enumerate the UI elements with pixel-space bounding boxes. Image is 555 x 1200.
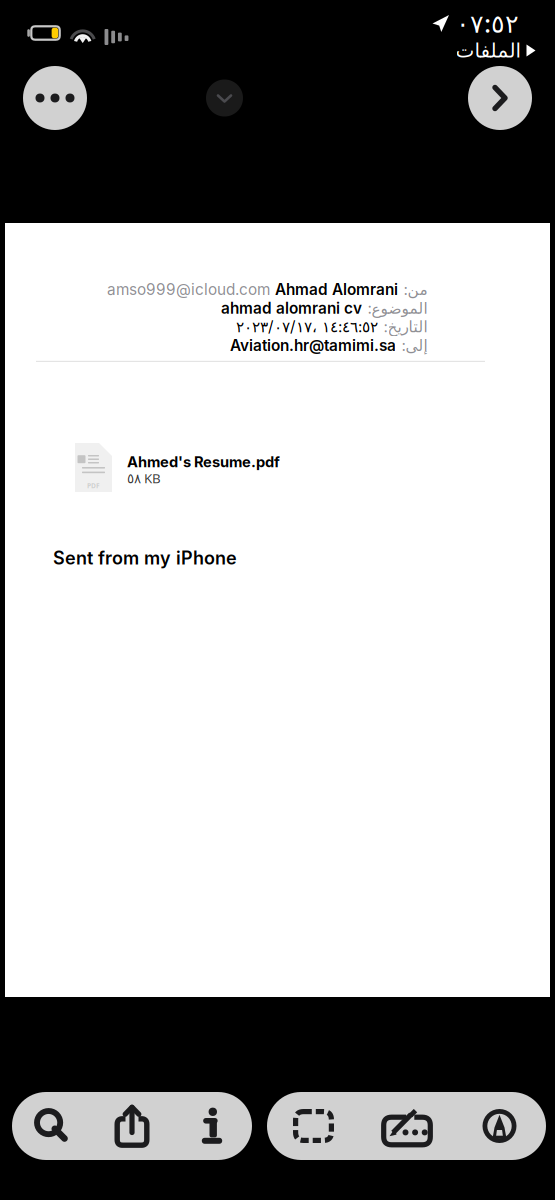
- staticText: ٠٧:٥٢: [456, 8, 519, 39]
- staticText: ٥٨ KB: [127, 469, 161, 487]
- staticText: PDF: [87, 481, 100, 490]
- button[interactable]: Collapse: [206, 79, 243, 116]
- staticText: الملفات: [455, 39, 521, 62]
- button[interactable]: Search: [12, 1092, 92, 1160]
- button[interactable]: More: [23, 66, 87, 130]
- staticText: Sent from my iPhone: [53, 547, 237, 569]
- button[interactable]: Crop: [267, 1092, 360, 1160]
- button[interactable]: Share: [92, 1092, 172, 1160]
- button[interactable]: Done: [468, 66, 532, 130]
- button[interactable]: Markup: [360, 1092, 453, 1160]
- staticText: التاريخ:: [383, 317, 427, 336]
- button[interactable]: Draw: [453, 1092, 546, 1160]
- button[interactable]: Info: [172, 1092, 252, 1160]
- staticText: amso999@icloud.com: [107, 280, 270, 299]
- staticText: Ahmed's Resume.pdf: [127, 453, 280, 471]
- staticText: ١٤:٤٦:٥٢ ،٢٠٢٣/٠٧/١٧: [236, 317, 378, 336]
- staticText: Ahmad Alomrani: [275, 280, 398, 299]
- button[interactable]: الملفات: [453, 37, 538, 64]
- staticText: الموضوع:: [367, 299, 427, 317]
- staticText: Aviation.hr@tamimi.sa: [230, 336, 396, 355]
- staticText: ahmad alomrani cv: [221, 299, 362, 317]
- staticText: من:: [403, 280, 427, 299]
- staticText: إلى:: [401, 336, 427, 355]
